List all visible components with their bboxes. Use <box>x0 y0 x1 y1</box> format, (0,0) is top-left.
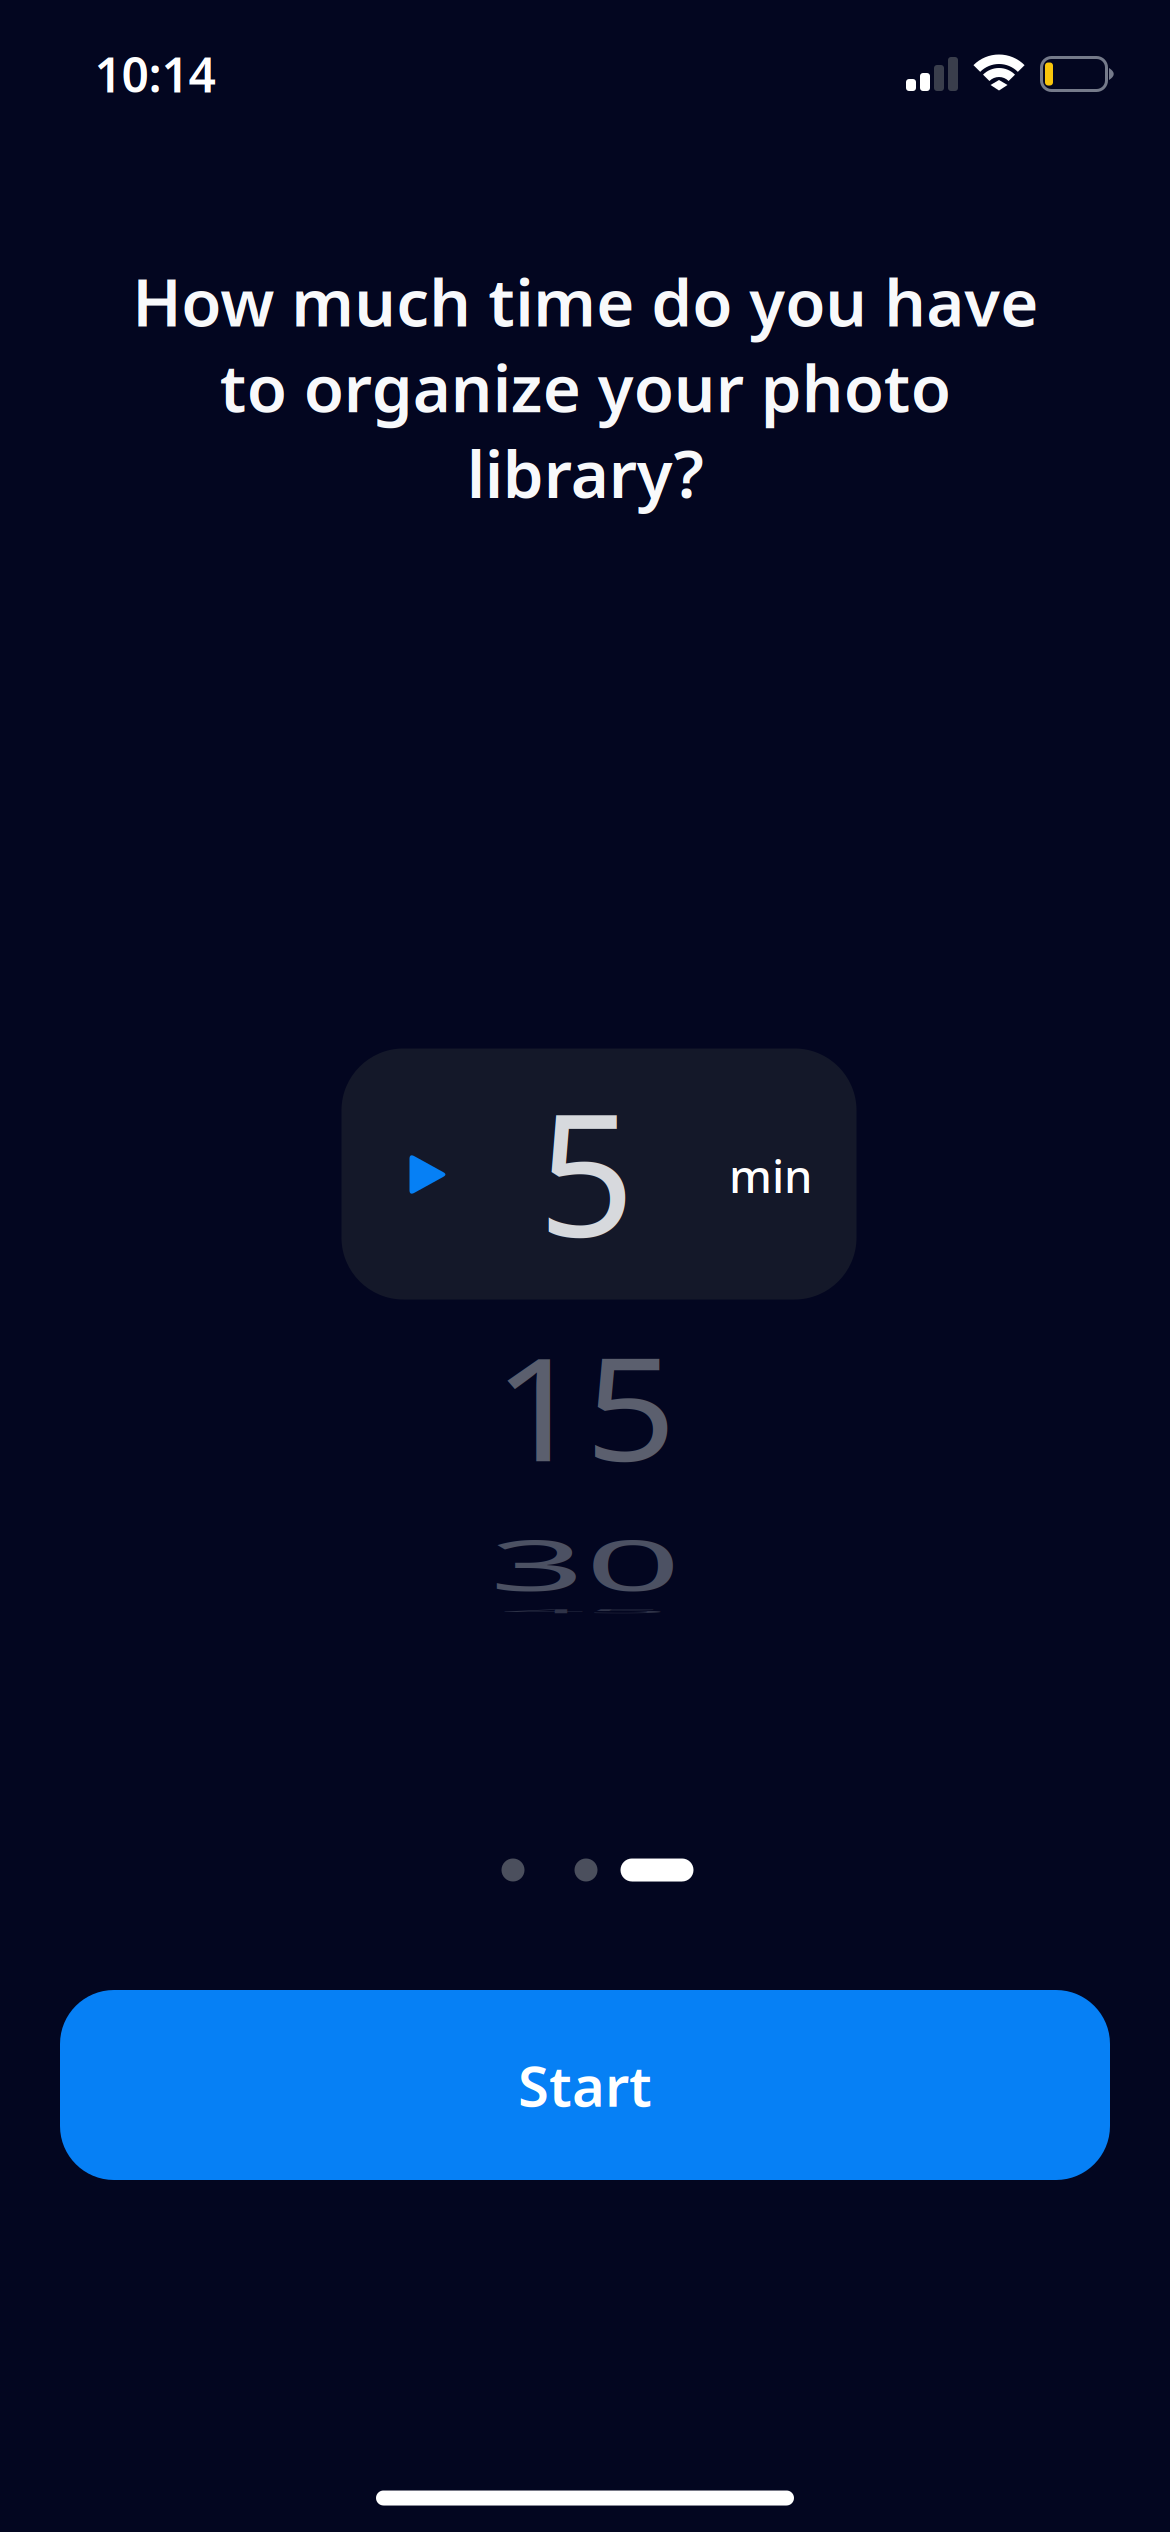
staticText: 45 <box>509 1522 661 1700</box>
button[interactable]: 30 <box>327 1519 842 1609</box>
button[interactable]: 15 <box>327 1331 842 1481</box>
button[interactable]: Page 2 <box>574 1858 597 1881</box>
staticText: min <box>729 1145 812 1206</box>
staticText: 5 <box>538 1058 635 1283</box>
button[interactable]: 5 <box>341 1048 856 1299</box>
staticText: How much time do you have to organize yo… <box>132 258 1038 516</box>
staticText: Start <box>518 2048 652 2122</box>
button[interactable]: Start <box>60 1990 1110 2180</box>
button[interactable]: Page 1 <box>501 1858 524 1881</box>
staticText: 30 <box>509 1475 661 1653</box>
button[interactable]: Page 3, current page <box>620 1858 693 1881</box>
staticText: 15 <box>503 1311 667 1501</box>
staticText: 10:14 <box>94 42 215 106</box>
